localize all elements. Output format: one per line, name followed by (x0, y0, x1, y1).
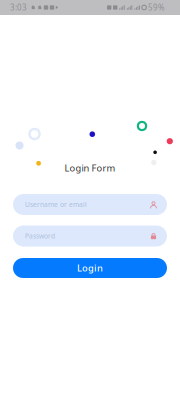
staticText: 59% (148, 2, 165, 13)
staticText: Login Form (64, 162, 115, 174)
button[interactable]: Login (13, 258, 167, 278)
staticText: Login (77, 262, 103, 274)
button[interactable]: Username or email (13, 194, 167, 215)
staticText: 3:03 (10, 2, 27, 13)
button[interactable]: Password (13, 225, 167, 246)
staticText: Username or email (25, 200, 87, 209)
staticText: Password (25, 232, 55, 240)
